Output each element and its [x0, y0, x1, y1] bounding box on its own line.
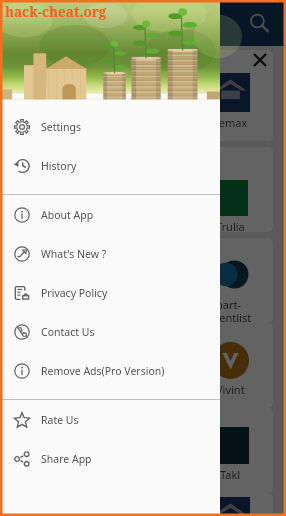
button[interactable]: Remax — [187, 50, 273, 141]
button[interactable]: Rate Us — [0, 400, 220, 439]
staticText: Remax — [212, 115, 248, 130]
button[interactable]: What's New ? — [0, 234, 220, 273]
button[interactable]: Search — [249, 13, 269, 33]
staticText: Remove Ads(Pro Version) — [41, 364, 165, 378]
button[interactable] — [95, 493, 181, 516]
staticText: Rate Us — [41, 413, 79, 427]
button[interactable]: Contact Us — [0, 312, 220, 351]
staticText: hack-cheat.org — [5, 3, 107, 21]
button[interactable]: Privacy Policy — [0, 273, 220, 312]
button[interactable]: Share App — [0, 439, 220, 478]
staticText: Takl — [220, 467, 241, 482]
staticText: Apart- mentlist — [209, 297, 252, 323]
button[interactable] — [187, 493, 273, 516]
button[interactable]: Vivint — [95, 323, 181, 408]
button[interactable]: Trulia — [95, 147, 181, 232]
button[interactable]: Settings — [0, 107, 220, 146]
staticText: History — [41, 159, 77, 173]
staticText: Share App — [41, 452, 92, 466]
staticText: Apart- mentlist — [25, 297, 68, 323]
staticText: Vivint — [216, 382, 245, 397]
staticText: About App — [41, 208, 94, 222]
button[interactable]: Apart- mentlist — [95, 238, 181, 323]
button[interactable]: About App — [0, 195, 220, 234]
staticText: Contact Us — [41, 325, 95, 339]
button[interactable]: Remove Ads(Pro Version) — [0, 351, 220, 390]
staticText: Trulia — [216, 219, 245, 232]
button[interactable]: Vivint — [187, 323, 273, 408]
button[interactable]: Trulia — [3, 147, 89, 232]
button[interactable]: Apart- mentlist — [187, 238, 273, 323]
staticText: Remax — [28, 115, 64, 130]
button[interactable]: Takl — [187, 408, 273, 493]
button[interactable]: Close — [254, 54, 266, 66]
button[interactable]: Apart- mentlist — [3, 238, 89, 323]
button[interactable]: Remax — [95, 50, 181, 141]
button[interactable]: History — [0, 146, 220, 185]
staticText: Privacy Policy — [41, 286, 108, 300]
button[interactable] — [3, 493, 89, 516]
button[interactable]: Remax — [3, 50, 89, 141]
button[interactable]: Trulia — [187, 147, 273, 232]
button[interactable]: Takl — [3, 408, 89, 493]
button[interactable]: Vivint — [3, 323, 89, 408]
staticText: Settings — [41, 120, 81, 134]
staticText: What's New ? — [41, 247, 107, 261]
